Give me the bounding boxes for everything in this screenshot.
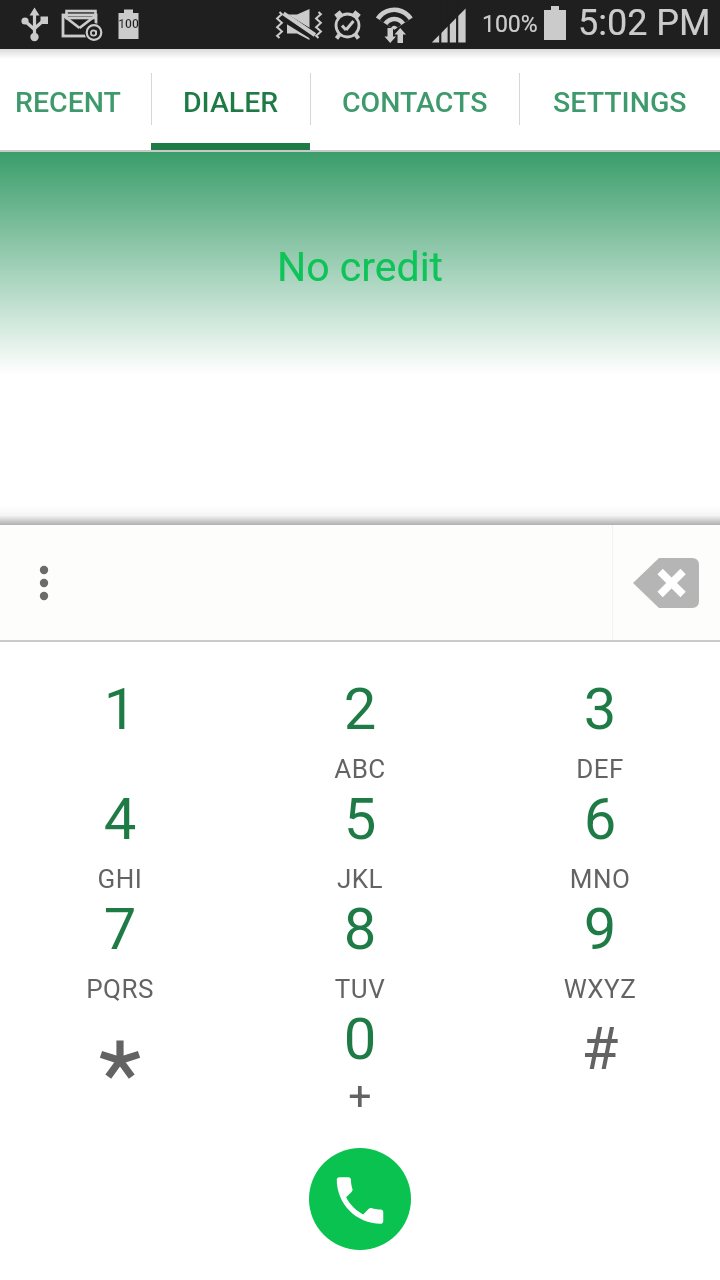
staticText: ABC xyxy=(240,754,480,784)
staticText: 5 xyxy=(240,785,480,853)
staticText: DEF xyxy=(480,754,720,784)
button[interactable]: Call xyxy=(309,1148,411,1250)
button[interactable]: More options xyxy=(22,553,66,613)
button[interactable]: 2 xyxy=(240,640,480,750)
staticText: 8 xyxy=(240,895,480,963)
staticText: No credit xyxy=(0,243,720,291)
button[interactable]: 6 xyxy=(480,750,720,860)
button[interactable]: Backspace xyxy=(633,558,699,608)
staticText: WXYZ xyxy=(480,974,720,1004)
button[interactable]: 9 xyxy=(480,860,720,970)
staticText: 6 xyxy=(480,785,720,853)
staticText: 9 xyxy=(480,895,720,963)
staticText: # xyxy=(480,1013,720,1083)
button[interactable]: 3 xyxy=(480,640,720,750)
staticText: JKL xyxy=(240,864,480,894)
staticText: CONTACTS xyxy=(342,86,488,119)
button[interactable]: star xyxy=(0,970,240,1080)
staticText: RECENT xyxy=(15,86,121,119)
staticText: 3 xyxy=(480,675,720,743)
button[interactable]: 1 xyxy=(0,640,240,750)
button[interactable]: 7 xyxy=(0,860,240,970)
staticText: 100 xyxy=(116,17,141,31)
button[interactable]: 0 xyxy=(240,970,480,1080)
button[interactable]: 4 xyxy=(0,750,240,860)
button[interactable]: CONTACTS xyxy=(310,49,519,150)
staticText: DIALER xyxy=(183,86,279,119)
staticText: 5:02 PM xyxy=(578,2,711,44)
staticText: 1 xyxy=(0,675,240,743)
button[interactable]: RECENT xyxy=(0,49,151,150)
staticText: SETTINGS xyxy=(553,86,687,119)
staticText: TUV xyxy=(240,974,480,1004)
staticText: 0 xyxy=(240,1005,480,1073)
button[interactable]: pound xyxy=(480,970,720,1080)
button[interactable]: 8 xyxy=(240,860,480,970)
staticText: 100% xyxy=(482,11,538,38)
staticText: GHI xyxy=(0,864,240,894)
button[interactable]: 5 xyxy=(240,750,480,860)
staticText: 2 xyxy=(240,675,480,743)
button[interactable]: DIALER xyxy=(151,49,310,150)
staticText: PQRS xyxy=(0,974,240,1004)
button[interactable]: SETTINGS xyxy=(519,49,720,150)
staticText: 7 xyxy=(0,895,240,963)
staticText: + xyxy=(240,1072,480,1120)
staticText: 4 xyxy=(0,785,240,853)
staticText: MNO xyxy=(480,864,720,894)
